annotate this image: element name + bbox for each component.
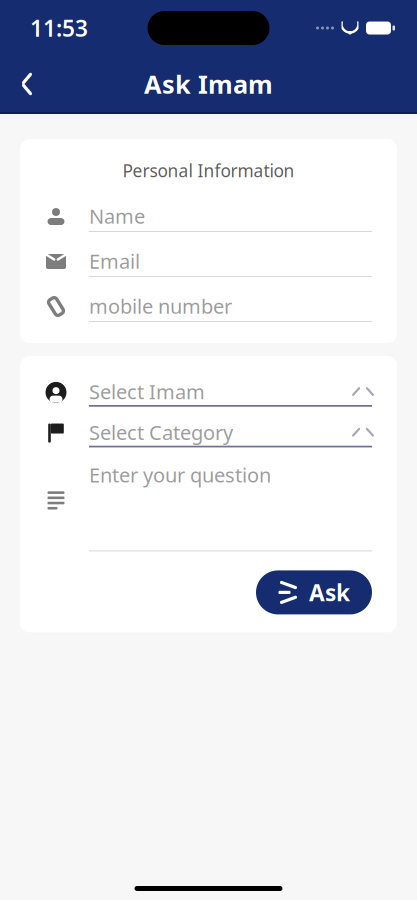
staticText: Personal Information: [122, 159, 294, 182]
button[interactable]: Email: [45, 239, 372, 284]
staticText: Email: [89, 248, 140, 274]
button[interactable]: Select Imam: [45, 372, 372, 413]
staticText: 11:53: [30, 13, 88, 43]
button[interactable]: Name: [45, 194, 372, 239]
button[interactable]: Back: [0, 63, 48, 105]
button[interactable]: Select Category: [45, 413, 372, 453]
button[interactable]: Ask: [256, 570, 372, 614]
staticText: Name: [89, 203, 145, 229]
staticText: Ask Imam: [144, 67, 273, 101]
staticText: Select Category: [89, 419, 233, 445]
staticText: mobile number: [89, 293, 232, 319]
staticText: Enter your question: [89, 461, 271, 488]
staticText: Select Imam: [89, 378, 205, 405]
button[interactable]: mobile number: [45, 284, 372, 329]
staticText: Ask: [309, 577, 350, 607]
